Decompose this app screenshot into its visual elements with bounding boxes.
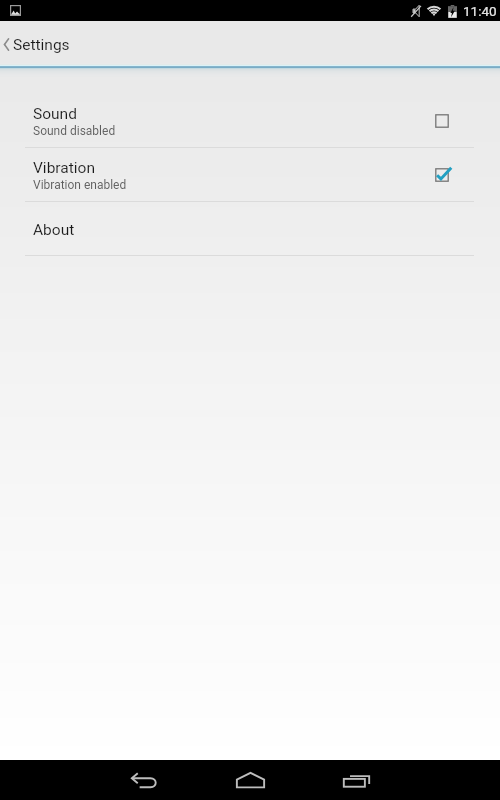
staticText: Sound disabled [33,124,116,138]
staticText: 11:40 [463,3,497,19]
button[interactable]: Enabled [425,158,459,192]
staticText: Vibration enabled [33,178,127,192]
staticText: Sound [33,105,77,123]
button[interactable]: Settings [0,21,500,66]
button[interactable]: Disabled [425,104,459,138]
button[interactable]: Home [197,760,303,800]
button[interactable]: Recent apps [303,760,409,800]
button[interactable]: About [0,202,500,255]
staticText: Settings [13,36,70,54]
staticText: Vibration [33,159,95,177]
button[interactable]: Back [91,760,197,800]
button[interactable]: Vibration [0,148,500,201]
button[interactable]: Sound [0,94,500,147]
staticText: About [33,221,75,239]
